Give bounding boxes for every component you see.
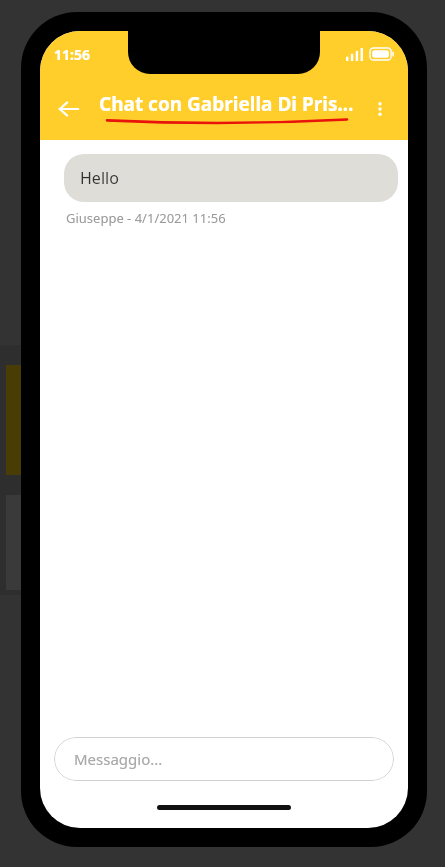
staticText: Messaggio... [74,749,163,769]
button[interactable]: Back [46,86,92,132]
staticText: Chat con Gabriella Di Pris... [99,91,354,117]
staticText: 11:56 [54,45,90,64]
staticText: Hello [80,167,119,189]
staticText: Giuseppe - 4/1/2021 11:56 [66,209,226,227]
button[interactable]: Hello [64,154,398,202]
button[interactable]: Messaggio... [54,737,394,781]
button[interactable]: Chat con Gabriella Di Pris... [92,91,360,126]
button[interactable]: More options [360,89,400,129]
